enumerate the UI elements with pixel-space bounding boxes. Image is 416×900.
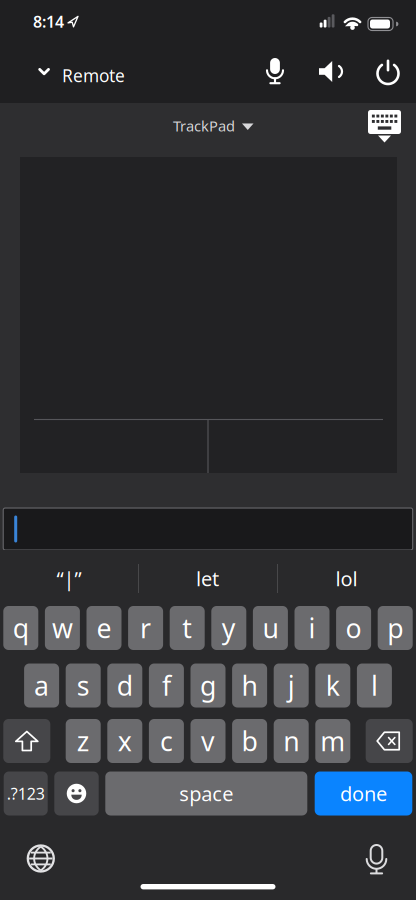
staticText: b [242,723,258,759]
staticText: lol [335,565,357,592]
button[interactable]: v [190,719,225,763]
button[interactable]: x [107,719,142,763]
button[interactable]: h [232,663,267,707]
button[interactable]: w [45,606,80,650]
button[interactable]: Microphone [257,52,293,90]
button[interactable]: k [315,663,350,707]
staticText: y [222,610,236,646]
button[interactable]: s [66,663,101,707]
staticText: space [179,780,233,807]
button[interactable]: Delete [366,719,413,763]
button[interactable]: o [336,606,371,650]
button[interactable]: e [86,606,121,650]
staticText: m [320,723,345,759]
staticText: h [242,668,258,703]
staticText: u [262,610,278,646]
button[interactable]: Power [371,54,405,91]
button[interactable]: Volume [313,54,349,89]
staticText: .?123 [7,783,45,804]
staticText: d [117,668,133,703]
button[interactable]: Next keyboard [22,840,59,877]
button[interactable]: p [378,606,413,650]
button[interactable]: lol [277,550,416,607]
button[interactable]: Dictation [356,839,396,881]
button[interactable]: Text input [3,508,413,550]
button[interactable]: Emoji [54,771,99,815]
button[interactable]: c [149,719,184,763]
button[interactable]: z [66,719,101,763]
button[interactable]: .?123 [4,771,48,815]
staticText: z [77,723,90,759]
staticText: 8:14 [33,11,64,32]
staticText: o [346,610,362,646]
button[interactable]: g [190,663,225,707]
button[interactable]: t [170,606,205,650]
staticText: a [34,668,49,703]
button[interactable]: Collapse [30,59,58,84]
staticText: g [200,668,216,703]
staticText: x [118,723,132,759]
button[interactable]: Trackpad [20,157,397,473]
button[interactable]: TrackPad [173,110,253,141]
staticText: j [288,668,295,703]
staticText: t [182,610,192,646]
staticText: n [283,723,299,759]
button[interactable]: n [274,719,309,763]
button[interactable]: space [105,771,307,815]
button[interactable]: let [138,550,277,607]
staticText: k [326,668,340,703]
button[interactable]: j [274,663,309,707]
staticText: r [140,610,151,646]
button[interactable]: Shift [3,719,50,763]
button[interactable]: Dismiss keyboard [364,106,405,146]
staticText: “|” [56,565,81,592]
button[interactable]: a [24,663,59,707]
button[interactable]: i [294,606,329,650]
button[interactable]: m [315,719,350,763]
staticText: q [13,610,29,646]
button[interactable]: b [232,719,267,763]
staticText: done [340,780,387,807]
button[interactable]: l [357,663,392,707]
button[interactable]: u [253,606,288,650]
staticText: let [196,565,219,592]
staticText: e [96,610,111,646]
button[interactable]: “|” [0,550,138,607]
staticText: p [387,610,403,646]
button[interactable]: r [128,606,163,650]
button[interactable]: y [211,606,246,650]
staticText: c [160,723,173,759]
staticText: l [371,668,378,703]
button[interactable]: done [315,771,412,815]
staticText: f [162,668,171,703]
staticText: v [201,723,215,759]
staticText: TrackPad [173,116,235,135]
staticText: Remote [62,64,125,87]
staticText: s [77,668,90,703]
staticText: w [52,610,73,646]
button[interactable]: d [107,663,142,707]
button[interactable]: f [149,663,184,707]
staticText: i [308,610,315,646]
button[interactable]: q [3,606,38,650]
